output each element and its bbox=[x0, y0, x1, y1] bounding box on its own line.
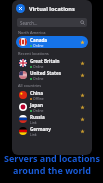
staticText: North America bbox=[18, 30, 46, 35]
staticText: Canada bbox=[30, 37, 48, 43]
other: Search bbox=[80, 20, 85, 25]
button[interactable]: China bbox=[16, 89, 88, 101]
other: Favorite United States bbox=[80, 73, 85, 78]
other: Favorite Japan bbox=[80, 105, 85, 110]
button[interactable]: Germany bbox=[16, 125, 88, 137]
staticText: Online bbox=[33, 76, 44, 81]
staticText: Japan bbox=[30, 102, 43, 108]
staticText: Servers and locations bbox=[4, 152, 100, 164]
staticText: Great Britain bbox=[30, 58, 60, 64]
staticText: Virtual locations bbox=[29, 5, 75, 13]
staticText: Link bbox=[30, 120, 37, 125]
staticText: Online bbox=[33, 43, 44, 48]
staticText: Search... bbox=[20, 20, 38, 26]
button[interactable]: Close bbox=[16, 4, 25, 13]
button[interactable]: United States bbox=[16, 69, 88, 81]
other: Favorite China bbox=[80, 93, 85, 98]
other: Favorite Russia bbox=[80, 117, 85, 122]
button[interactable]: Canada bbox=[16, 36, 88, 48]
staticText: China bbox=[30, 90, 44, 96]
staticText: Germany bbox=[30, 126, 51, 132]
button[interactable]: Great Britain bbox=[16, 57, 88, 69]
button[interactable]: Russia bbox=[16, 113, 88, 125]
button[interactable]: Search... bbox=[17, 18, 87, 27]
staticText: Online bbox=[33, 64, 44, 69]
button[interactable]: Japan bbox=[16, 101, 88, 113]
staticText: United States bbox=[30, 70, 61, 76]
other: Favorite Great Britain bbox=[80, 61, 85, 66]
staticText: around the world bbox=[13, 164, 91, 176]
staticText: Russia bbox=[30, 114, 45, 120]
staticText: Recent locations bbox=[18, 51, 49, 56]
staticText: Online bbox=[33, 108, 44, 113]
staticText: Offline bbox=[33, 96, 44, 101]
other: Favorite Canada bbox=[80, 40, 85, 45]
other: Favorite Germany bbox=[80, 129, 85, 134]
staticText: Link bbox=[30, 132, 37, 137]
staticText: All countries bbox=[18, 83, 42, 88]
